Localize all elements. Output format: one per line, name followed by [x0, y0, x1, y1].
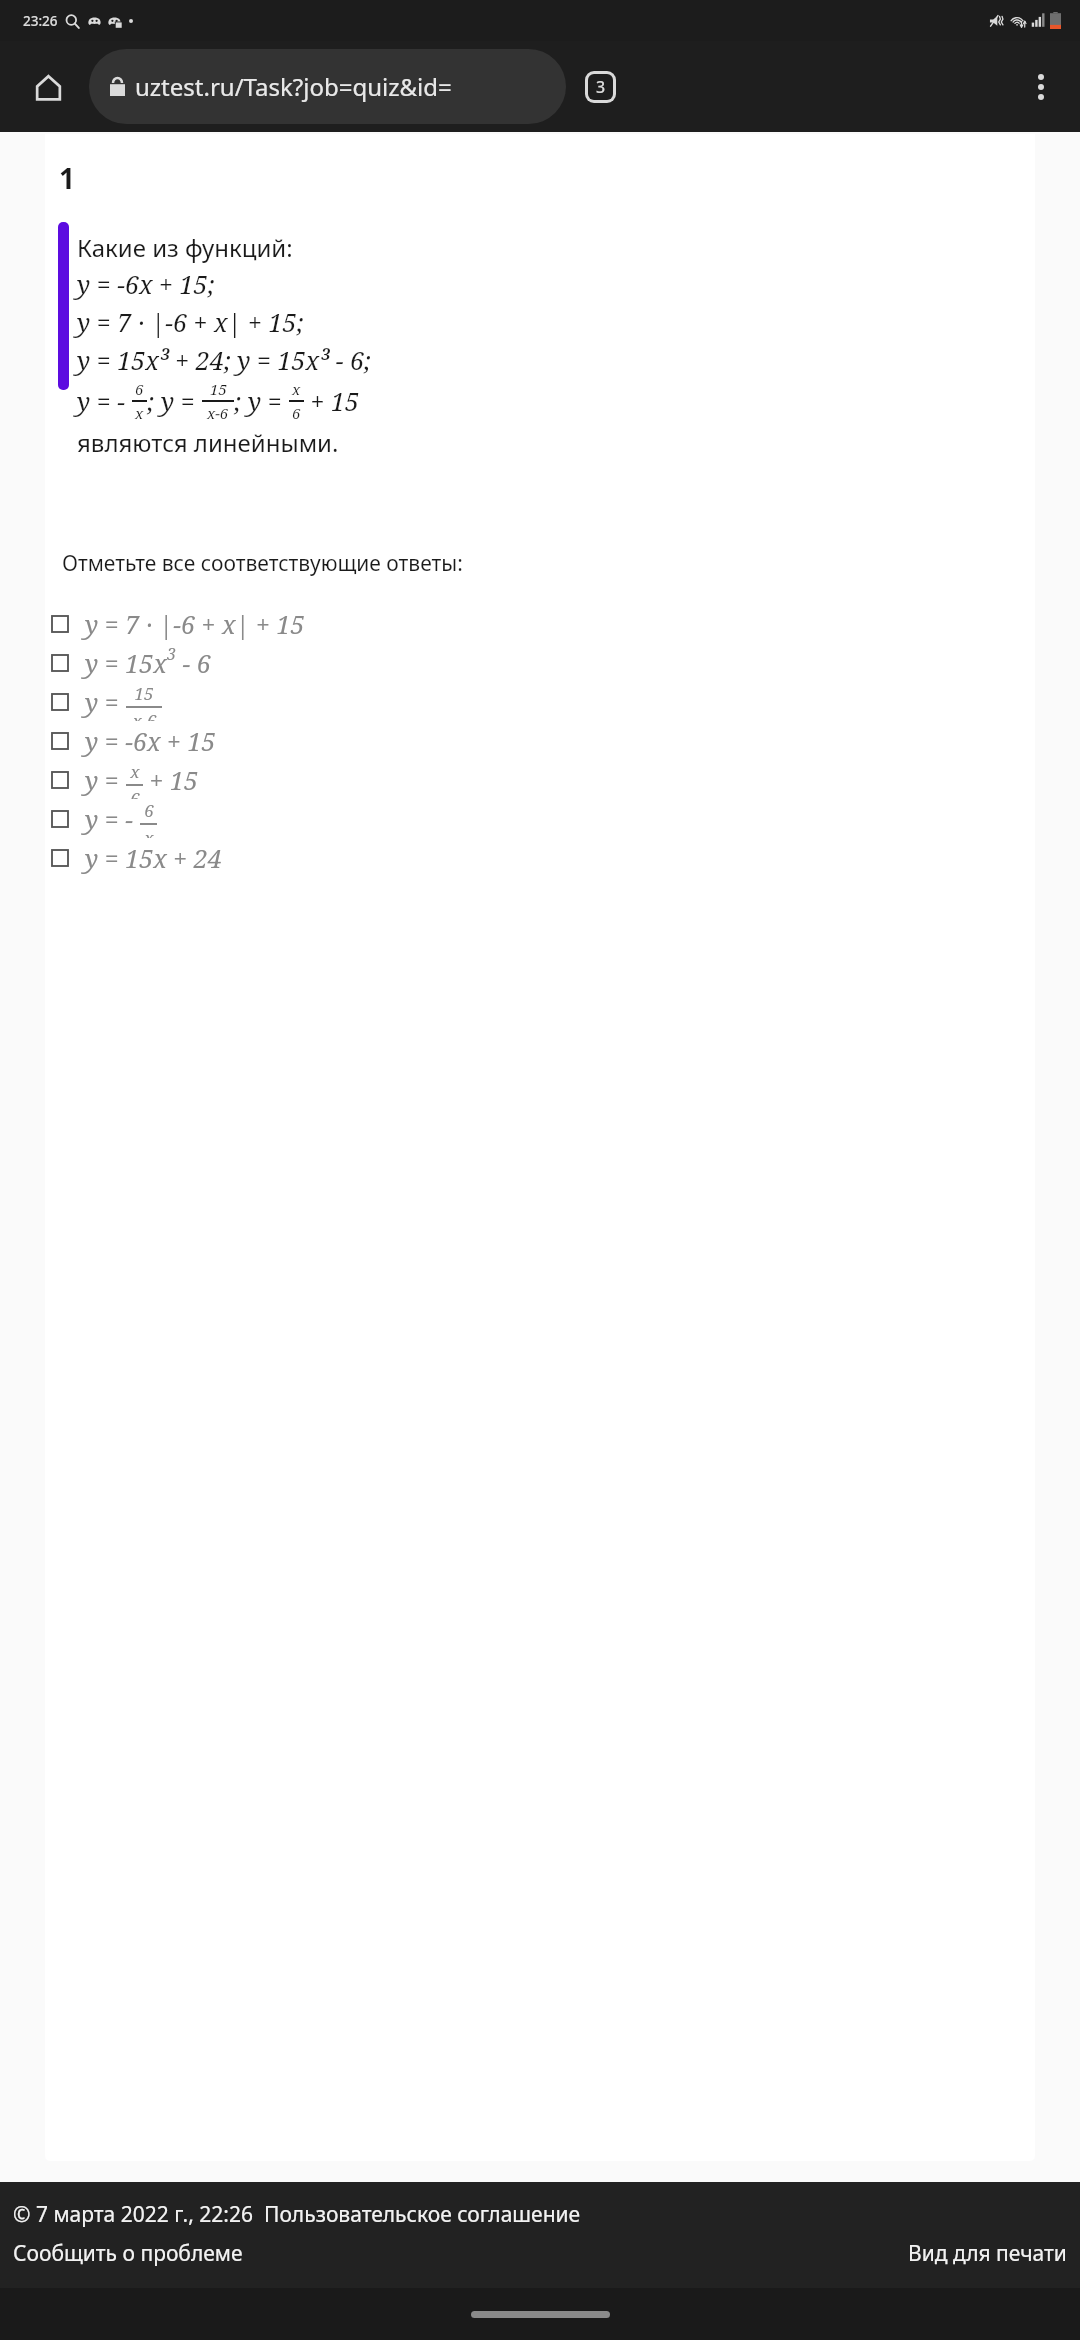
- staticText: 15: [134, 682, 154, 705]
- staticText: y = −: [85, 802, 140, 836]
- staticText: являются линейными.: [77, 426, 339, 459]
- staticText: ;: [147, 384, 161, 418]
- button[interactable]: y = 15x: [45, 643, 1035, 682]
- staticText: x: [130, 760, 140, 783]
- staticText: y = −: [77, 384, 132, 418]
- staticText: x: [144, 826, 154, 838]
- staticText: 6: [130, 787, 140, 799]
- staticText: 3: [167, 643, 176, 665]
- button[interactable]: Вид для печати: [908, 2239, 1067, 2268]
- staticText: uztest.ru/Task?job=quiz&id=: [135, 70, 452, 103]
- staticText: x: [135, 403, 144, 423]
- button[interactable]: y = −6x + 15: [45, 721, 1035, 760]
- staticText: y = 15x + 24: [85, 841, 222, 875]
- staticText: y = 15x³ + 24; y = 15x³ − 6;: [77, 343, 372, 377]
- staticText: + 15: [143, 763, 198, 797]
- staticText: Отметьте все соответствующие ответы:: [62, 549, 463, 578]
- staticText: 3: [596, 76, 606, 98]
- staticText: + 15: [304, 384, 359, 418]
- button[interactable]: y =: [45, 760, 1035, 799]
- staticText: y = 15x: [85, 646, 167, 680]
- staticText: y = −6x + 15;: [77, 267, 215, 301]
- staticText: x−6: [207, 403, 229, 423]
- staticText: 6: [144, 799, 154, 822]
- button[interactable]: Пользовательское соглашение: [264, 2200, 581, 2229]
- staticText: x: [292, 379, 301, 399]
- staticText: y =: [85, 685, 126, 719]
- button[interactable]: y = 7 · |−6 + x| + 15: [45, 604, 1035, 643]
- button[interactable]: y =: [45, 682, 1035, 721]
- button[interactable]: uztest.ru/Task?job=quiz&id=: [89, 49, 566, 124]
- staticText: y =: [85, 763, 126, 797]
- button[interactable]: y = 15x + 24: [45, 838, 1035, 877]
- staticText: y = 7 · |−6 + x| + 15;: [77, 305, 304, 339]
- button[interactable]: More options: [1019, 65, 1063, 109]
- staticText: 6: [292, 403, 301, 423]
- staticText: Сообщить о проблеме: [13, 2239, 243, 2268]
- staticText: y =: [161, 384, 202, 418]
- staticText: © 7 марта 2022 г., 22:26: [13, 2200, 253, 2229]
- staticText: 6: [135, 379, 144, 399]
- staticText: 1: [59, 159, 76, 197]
- staticText: Вид для печати: [908, 2239, 1067, 2268]
- button[interactable]: Сообщить о проблеме: [13, 2239, 243, 2268]
- staticText: 23:26: [23, 12, 58, 30]
- staticText: 15: [210, 379, 227, 399]
- staticText: y = 7 · |−6 + x| + 15: [85, 607, 305, 641]
- button[interactable]: y = −: [45, 799, 1035, 838]
- staticText: Какие из функций:: [77, 231, 293, 264]
- button[interactable]: Tabs, 3 open: [578, 65, 622, 109]
- staticText: − 6: [176, 646, 211, 680]
- staticText: y = −6x + 15: [85, 724, 216, 758]
- staticText: ;: [234, 384, 248, 418]
- button[interactable]: Home: [26, 65, 70, 109]
- staticText: x−6: [132, 709, 157, 721]
- staticText: y =: [248, 384, 289, 418]
- staticText: Пользовательское соглашение: [264, 2200, 581, 2229]
